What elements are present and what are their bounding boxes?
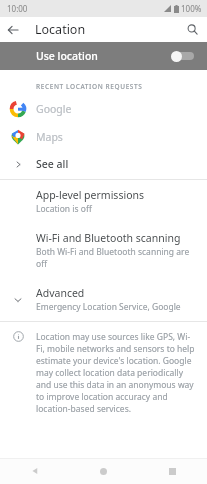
button[interactable]: Google	[0, 95, 207, 123]
staticText: RECENT LOCATION REQUESTS	[36, 82, 143, 91]
button[interactable]: Use location	[0, 42, 207, 70]
button[interactable]: Home	[69, 458, 138, 484]
staticText: Emergency Location Service, Google Locat…	[36, 301, 199, 313]
staticText: App-level permissions	[36, 188, 145, 202]
staticText: Location is off	[36, 203, 92, 215]
button[interactable]: App-level permissions	[0, 180, 207, 223]
button[interactable]: Advanced	[0, 278, 207, 321]
staticText: Both Wi-Fi and Bluetooth scanning are of…	[36, 246, 195, 270]
button[interactable]: Search	[179, 17, 205, 42]
button[interactable]: Wi-Fi and Bluetooth scanning	[0, 223, 207, 278]
button[interactable]: Recent apps	[138, 458, 207, 484]
staticText: See all	[36, 157, 69, 171]
staticText: Location	[35, 21, 86, 38]
staticText: Use location	[36, 49, 98, 63]
button[interactable]: Back	[0, 17, 26, 42]
staticText: Maps	[36, 130, 63, 144]
staticText: Advanced	[36, 286, 85, 300]
button[interactable]: Back	[0, 458, 69, 484]
staticText: 100%	[181, 3, 202, 14]
button[interactable]: Maps	[0, 123, 207, 151]
staticText: Wi-Fi and Bluetooth scanning	[36, 231, 181, 245]
staticText: Location may use sources like GPS, Wi-Fi…	[36, 331, 195, 415]
staticText: 10:00	[7, 3, 28, 14]
button[interactable]: See all	[0, 151, 207, 177]
staticText: Google	[36, 102, 72, 116]
